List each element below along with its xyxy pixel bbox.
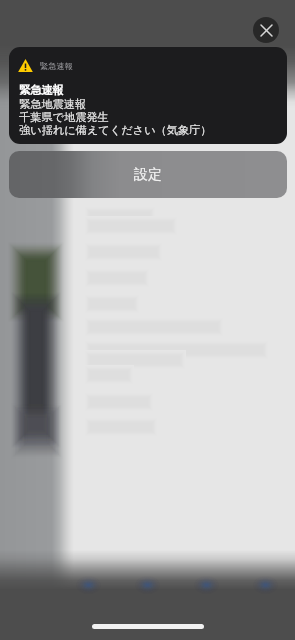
button[interactable]: 設定 xyxy=(9,151,287,198)
button[interactable]: 緊急速報 xyxy=(9,47,287,144)
button[interactable]: Close xyxy=(253,17,279,43)
staticText: 緊急速報 xyxy=(40,61,73,71)
staticText: 緊急地震速報 千葉県で地震発生 強い揺れに備えてください（気象庁） xyxy=(19,97,212,137)
staticText: 緊急速報 xyxy=(19,83,64,97)
staticText: 設定 xyxy=(134,166,162,184)
